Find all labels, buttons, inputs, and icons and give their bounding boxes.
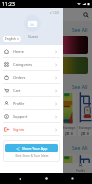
button[interactable]: See All <box>0 27 92 33</box>
staticText: Guest <box>28 34 38 39</box>
button[interactable]: Profile <box>69 163 92 173</box>
button[interactable]: Profile <box>0 97 63 110</box>
button[interactable]: Signin <box>0 123 63 136</box>
staticText: Best Store & Your Ideas <box>15 154 49 158</box>
staticText: Signin <box>13 127 25 132</box>
button[interactable]: Orders <box>0 71 63 84</box>
staticText: v 1.0.0 <box>50 11 60 15</box>
staticText: JD 3 <box>62 131 76 136</box>
button[interactable]: English <box>3 36 21 42</box>
staticText: 11:23 <box>2 1 15 8</box>
button[interactable] <box>40 57 88 74</box>
button[interactable] <box>40 36 88 54</box>
button[interactable]: Categories <box>0 58 63 71</box>
staticText: Orders <box>13 75 26 80</box>
staticText: See All <box>72 84 88 90</box>
button[interactable]: See All <box>0 145 92 151</box>
staticText: Profile <box>13 101 25 106</box>
staticText: English <box>5 37 16 41</box>
staticText: Share Your App <box>22 146 48 151</box>
button[interactable]: Storage <box>62 154 76 184</box>
staticText: JD 3 <box>78 131 92 136</box>
button[interactable]: See All <box>0 84 92 90</box>
staticText: Storage <box>62 125 76 130</box>
button[interactable]: Support <box>0 110 63 123</box>
button[interactable]: Share Your App <box>5 144 58 152</box>
staticText: See All <box>72 27 88 33</box>
staticText: Categories <box>13 62 33 67</box>
button[interactable]: Home <box>0 45 63 58</box>
button[interactable]: Cart <box>46 163 69 173</box>
button[interactable]: Search <box>83 12 89 18</box>
button[interactable]: Cart <box>0 84 63 97</box>
button[interactable]: Storage <box>62 91 76 136</box>
staticText: Storage <box>78 125 92 130</box>
button[interactable]: Storage <box>78 154 92 184</box>
staticText: See All <box>72 145 88 151</box>
staticText: Support <box>13 114 28 119</box>
staticText: Profile <box>76 169 86 173</box>
button[interactable]: Storage <box>78 91 92 136</box>
staticText: Home <box>13 49 24 54</box>
staticText: Cart <box>13 88 21 93</box>
